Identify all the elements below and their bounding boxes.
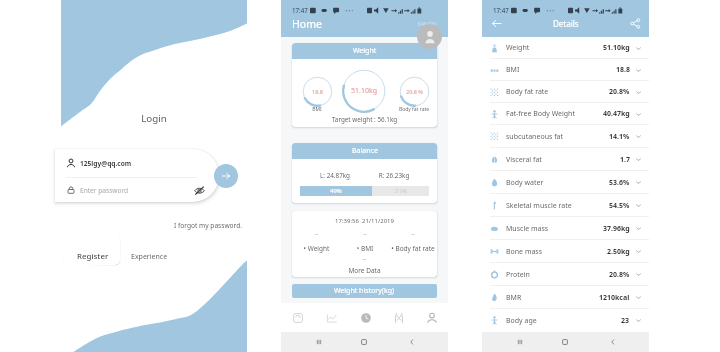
button[interactable]: Weight history(kg)	[292, 284, 437, 298]
button[interactable]: Sign in	[214, 164, 238, 188]
button[interactable]: subcutaneous fat	[482, 125, 649, 148]
staticText: BMI	[506, 65, 520, 75]
button[interactable]: Me	[415, 303, 448, 332]
staticText: 20.8%	[609, 270, 630, 280]
staticText: 17:39:56 21/11/2019	[292, 217, 437, 225]
button[interactable]: Visceral fat	[482, 148, 649, 171]
staticText: Target weight : 56.1kg	[292, 115, 437, 124]
button[interactable]: Scale	[281, 303, 315, 332]
staticText: 2.50kg	[607, 247, 630, 257]
staticText: 51.10kg	[351, 86, 377, 96]
staticText: --	[341, 231, 389, 238]
staticText: 54.5%	[609, 201, 630, 211]
staticText: 40.47kg	[603, 109, 630, 119]
staticText: Weight	[506, 43, 530, 53]
staticText: BMI	[297, 106, 337, 113]
staticText: I forgot my password.	[61, 221, 242, 230]
staticText: R: 26.23kg	[364, 171, 424, 180]
staticText: 1210kcal	[599, 293, 630, 303]
staticText: 18.8	[312, 88, 323, 95]
staticText: Visceral fat	[506, 155, 542, 165]
button[interactable]: Home	[358, 336, 370, 348]
button[interactable]: Body age	[482, 309, 649, 332]
staticText: 20.8%	[609, 87, 630, 97]
staticText: • Weight	[292, 244, 341, 253]
button[interactable]: 125lgy@qq.com	[61, 149, 219, 177]
staticText: Body water	[506, 178, 544, 188]
staticText: --	[292, 231, 341, 238]
button[interactable]: Muscle mass	[482, 217, 649, 240]
staticText: 18.8	[616, 65, 630, 75]
staticText: subcutaneous fat	[506, 132, 563, 142]
button[interactable]: Experience	[131, 252, 168, 262]
button[interactable]: Recents	[313, 336, 325, 348]
button[interactable]: Register	[77, 251, 109, 262]
button[interactable]: Bone mass	[482, 240, 649, 263]
button[interactable]: Enter password	[61, 178, 219, 202]
staticText: 49%	[330, 187, 342, 195]
staticText: Muscle mass	[506, 224, 549, 234]
button[interactable]: Profile	[417, 24, 442, 49]
staticText: 346/90	[417, 20, 437, 28]
staticText: Details	[553, 18, 579, 29]
staticText: 51%	[395, 187, 407, 195]
button[interactable]: Back	[490, 17, 503, 30]
button[interactable]: Body water	[482, 171, 649, 194]
button[interactable]: I forgot my password.	[61, 221, 242, 230]
staticText: Protein	[506, 270, 530, 280]
staticText: 17:47	[493, 6, 509, 14]
staticText: • Body fat rate	[389, 244, 437, 253]
staticText: Enter password	[80, 186, 129, 195]
button[interactable]: BMR	[482, 286, 649, 309]
staticText: 14.1%	[609, 132, 630, 142]
button[interactable]: Body	[382, 303, 415, 332]
staticText: Login	[61, 112, 247, 125]
staticText: 51.10kg	[603, 43, 630, 53]
staticText: Bone mass	[506, 247, 543, 257]
button[interactable]: Protein	[482, 263, 649, 286]
staticText: Experience	[131, 252, 168, 262]
button[interactable]: Body fat rate	[482, 81, 649, 103]
button[interactable]: Show password	[194, 185, 205, 196]
button[interactable]: More Data	[292, 266, 437, 275]
staticText: --	[389, 231, 437, 238]
staticText: Home	[292, 17, 322, 31]
button[interactable]: Skeletal muscle rate	[482, 194, 649, 217]
staticText: 53.6%	[609, 178, 630, 188]
staticText: Register	[77, 251, 109, 262]
staticText: Body fat rate	[391, 106, 437, 113]
staticText: Skeletal muscle rate	[506, 201, 572, 211]
staticText: Body age	[506, 316, 537, 326]
staticText: 1.7	[620, 155, 630, 165]
button[interactable]: BMI	[482, 59, 649, 81]
button[interactable]: Share	[630, 18, 641, 29]
staticText: 20.8 %	[406, 88, 423, 95]
button[interactable]: Weight	[482, 37, 649, 59]
staticText: 23	[621, 316, 630, 326]
staticText: Body fat rate	[506, 87, 549, 97]
staticText: • BMI	[341, 244, 389, 253]
staticText: More Data	[292, 266, 437, 275]
button[interactable]: Home	[559, 336, 571, 348]
button[interactable]: Fat-free Body Weight	[482, 103, 649, 125]
staticText: Weight	[353, 46, 377, 56]
button[interactable]: Recents	[514, 336, 526, 348]
staticText: BMR	[506, 293, 522, 303]
staticText: Balance	[352, 146, 378, 156]
staticText: Fat-free Body Weight	[506, 109, 575, 119]
button[interactable]: Trend	[315, 303, 349, 332]
staticText: 17:47	[292, 6, 308, 14]
button[interactable]: Measure	[349, 303, 382, 332]
staticText: 125lgy@qq.com	[80, 159, 132, 168]
button[interactable]: Back	[607, 336, 619, 348]
staticText: 37.96kg	[603, 224, 630, 234]
staticText: L: 24.87kg	[305, 171, 365, 180]
staticText: Weight history(kg)	[334, 286, 395, 296]
button[interactable]: Back	[406, 336, 418, 348]
